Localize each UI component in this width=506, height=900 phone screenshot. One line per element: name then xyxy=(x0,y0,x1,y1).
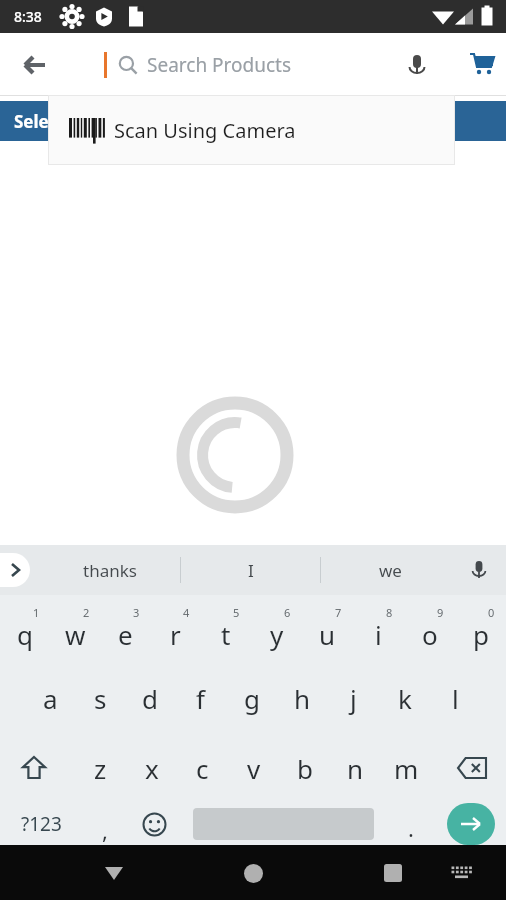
staticText: 5 xyxy=(233,605,240,620)
staticText: , xyxy=(102,815,108,845)
button[interactable]: 5 xyxy=(200,595,251,663)
button[interactable]: Home xyxy=(229,849,277,897)
button[interactable]: Select xyxy=(0,101,506,141)
staticText: l xyxy=(452,681,459,716)
staticText: 8 xyxy=(386,605,393,620)
button[interactable]: Enter xyxy=(436,803,506,845)
button[interactable]: k xyxy=(379,663,430,733)
staticText: m xyxy=(394,751,419,786)
button[interactable]: we xyxy=(321,545,460,595)
staticText: h xyxy=(294,681,311,716)
staticText: o xyxy=(422,617,438,652)
staticText: j xyxy=(350,681,357,716)
button[interactable]: I xyxy=(181,545,320,595)
button[interactable]: . xyxy=(386,803,436,845)
staticText: Scan Using Camera xyxy=(114,117,296,144)
staticText: k xyxy=(398,681,412,716)
button[interactable]: thanks xyxy=(40,545,180,595)
staticText: I xyxy=(248,559,254,582)
staticText: t xyxy=(221,617,231,652)
button[interactable]: Voice input xyxy=(459,550,499,590)
staticText: Search Products xyxy=(147,52,292,78)
staticText: thanks xyxy=(83,559,137,582)
button[interactable]: 3 xyxy=(100,595,150,663)
button[interactable]: h xyxy=(277,663,328,733)
staticText: 0 xyxy=(488,605,495,620)
button[interactable]: m xyxy=(381,733,432,803)
staticText: w xyxy=(65,617,86,652)
button[interactable]: a xyxy=(25,663,75,733)
staticText: e xyxy=(118,617,133,652)
button[interactable]: l xyxy=(430,663,481,733)
staticText: f xyxy=(196,681,205,716)
staticText: p xyxy=(473,617,489,652)
staticText: q xyxy=(17,617,33,652)
button[interactable]: c xyxy=(177,733,228,803)
staticText: u xyxy=(319,617,336,652)
staticText: ?123 xyxy=(21,811,62,837)
button[interactable]: Shift xyxy=(0,733,68,803)
button[interactable]: 0 xyxy=(455,595,506,663)
button[interactable]: f xyxy=(175,663,226,733)
button[interactable]: 2 xyxy=(50,595,100,663)
staticText: n xyxy=(347,751,364,786)
button[interactable]: s xyxy=(75,663,125,733)
button[interactable]: 8 xyxy=(353,595,404,663)
button[interactable]: Backspace xyxy=(438,733,506,803)
button[interactable]: Voice search xyxy=(395,43,439,87)
staticText: d xyxy=(142,681,158,716)
button[interactable]: Hide keyboard xyxy=(90,849,138,897)
staticText: z xyxy=(94,751,107,786)
button[interactable]: 9 xyxy=(404,595,455,663)
staticText: 8:38 xyxy=(14,7,42,26)
staticText: x xyxy=(145,751,159,786)
button[interactable]: b xyxy=(279,733,330,803)
staticText: 6 xyxy=(284,605,291,620)
staticText: i xyxy=(375,617,382,652)
button[interactable] xyxy=(180,803,386,845)
button[interactable]: 7 xyxy=(302,595,353,663)
button[interactable]: ?123 xyxy=(0,803,82,845)
staticText: b xyxy=(297,751,313,786)
staticText: we xyxy=(379,559,402,582)
staticText: v xyxy=(247,751,261,786)
button[interactable]: Emoji xyxy=(128,803,180,845)
staticText: 9 xyxy=(437,605,444,620)
button[interactable]: g xyxy=(226,663,277,733)
button[interactable]: , xyxy=(82,803,128,845)
button[interactable]: Recents xyxy=(369,849,417,897)
staticText: Select xyxy=(14,110,65,133)
staticText: 3 xyxy=(133,605,140,620)
staticText: s xyxy=(94,681,107,716)
button[interactable]: z xyxy=(74,733,126,803)
staticText: 1 xyxy=(33,605,40,620)
staticText: . xyxy=(408,813,414,843)
button[interactable]: 1 xyxy=(0,595,50,663)
button[interactable]: n xyxy=(330,733,381,803)
staticText: g xyxy=(244,681,260,716)
button[interactable]: x xyxy=(126,733,177,803)
staticText: 4 xyxy=(183,605,190,620)
button[interactable]: Cart xyxy=(460,43,504,87)
button[interactable]: Back xyxy=(11,41,59,89)
staticText: c xyxy=(196,751,209,786)
staticText: a xyxy=(43,681,58,716)
button[interactable]: d xyxy=(125,663,175,733)
button[interactable]: Scan Using Camera xyxy=(48,95,455,165)
staticText: 7 xyxy=(335,605,342,620)
staticText: y xyxy=(270,617,284,652)
button[interactable]: More suggestions xyxy=(0,553,30,587)
staticText: r xyxy=(170,617,181,652)
staticText: 2 xyxy=(83,605,90,620)
button[interactable]: v xyxy=(228,733,279,803)
button[interactable]: Search Products xyxy=(104,41,394,89)
button[interactable]: 4 xyxy=(150,595,200,663)
button[interactable]: j xyxy=(328,663,379,733)
button[interactable]: Change keyboard xyxy=(440,851,484,895)
button[interactable]: 6 xyxy=(251,595,302,663)
